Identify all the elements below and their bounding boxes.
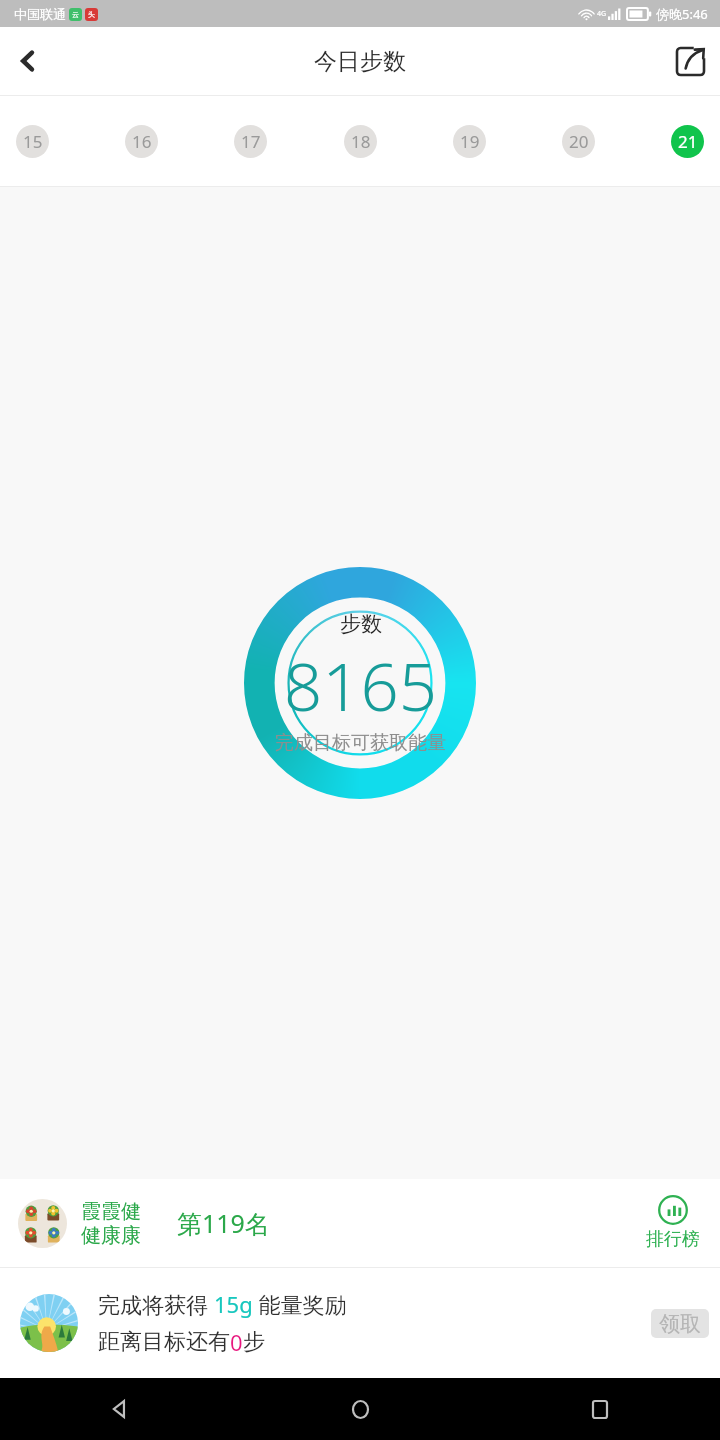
staticText: 完成目标可获取能量 bbox=[275, 731, 446, 755]
staticText: 距离目标还有 bbox=[98, 1328, 230, 1356]
staticText: 步数 bbox=[340, 611, 382, 637]
button[interactable]: Home bbox=[240, 1378, 480, 1440]
staticText: 中国联通 bbox=[14, 6, 66, 22]
staticText: 排行榜 bbox=[646, 1228, 700, 1251]
staticText: 头 bbox=[88, 10, 95, 19]
staticText: 完成将获得 bbox=[98, 1289, 214, 1319]
staticText: 17 bbox=[241, 130, 261, 153]
staticText: 云 bbox=[72, 10, 79, 19]
staticText: 15g bbox=[214, 1289, 253, 1319]
staticText: 霞霞健健康康 bbox=[81, 1199, 157, 1248]
button[interactable]: 16 bbox=[125, 125, 158, 158]
staticText: 傍晚5:46 bbox=[656, 5, 708, 23]
button[interactable]: 17 bbox=[234, 125, 267, 158]
staticText: 18 bbox=[351, 130, 371, 153]
staticText: 能量奖励 bbox=[253, 1289, 347, 1319]
staticText: 4G bbox=[597, 9, 607, 19]
staticText: 21 bbox=[678, 130, 698, 153]
button[interactable]: 19 bbox=[453, 125, 486, 158]
button[interactable]: 20 bbox=[562, 125, 595, 158]
staticText: 20 bbox=[569, 130, 589, 153]
button[interactable]: 排行榜 bbox=[646, 1195, 700, 1251]
staticText: 8165 bbox=[284, 639, 438, 730]
button[interactable]: 18 bbox=[344, 125, 377, 158]
staticText: 0 bbox=[230, 1327, 243, 1357]
staticText: 16 bbox=[132, 130, 152, 153]
button[interactable]: 15 bbox=[16, 125, 49, 158]
button[interactable]: 领取 bbox=[651, 1309, 709, 1338]
staticText: 今日步数 bbox=[314, 47, 406, 76]
button[interactable]: Back bbox=[0, 1378, 240, 1440]
button[interactable]: 霞霞健健康康 bbox=[0, 1179, 720, 1267]
button[interactable]: Back bbox=[0, 33, 56, 89]
staticText: 步 bbox=[243, 1328, 265, 1356]
button[interactable]: Recents bbox=[480, 1378, 720, 1440]
button[interactable]: 21 bbox=[671, 125, 704, 158]
staticText: 第119名 bbox=[177, 1206, 270, 1240]
button[interactable]: Share bbox=[660, 31, 720, 91]
staticText: 19 bbox=[460, 130, 480, 153]
staticText: 领取 bbox=[659, 1311, 701, 1337]
staticText: 15 bbox=[23, 130, 43, 153]
